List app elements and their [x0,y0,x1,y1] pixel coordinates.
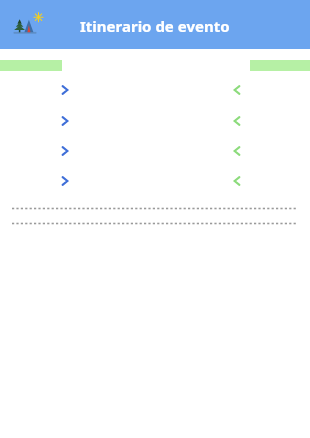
button[interactable]: Expandir [59,84,71,96]
button[interactable]: Expandir [59,145,71,157]
button[interactable]: Expandir [59,115,71,127]
button[interactable]: Expandir [59,175,71,187]
button[interactable]: Contraer [231,84,243,96]
button[interactable]: Camping [13,12,43,38]
staticText: Itinerario de evento [80,16,230,36]
button[interactable]: Contraer [231,115,243,127]
button[interactable]: Contraer [231,145,243,157]
button[interactable]: Contraer [231,175,243,187]
